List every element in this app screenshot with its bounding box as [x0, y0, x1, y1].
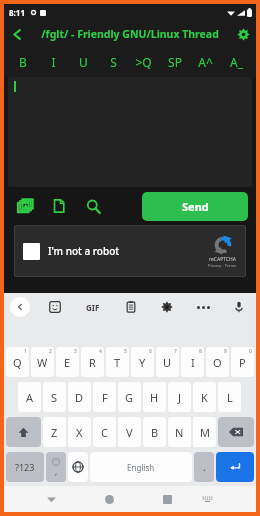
staticText: L	[227, 390, 233, 405]
button[interactable]: Enter	[216, 452, 254, 482]
staticText: 4	[99, 348, 102, 355]
button[interactable]: Stickers	[44, 296, 66, 318]
staticText: P	[239, 355, 246, 370]
button[interactable]: Z	[43, 417, 66, 447]
button[interactable]: E	[56, 347, 79, 377]
staticText: O	[213, 355, 222, 370]
button[interactable]: G	[118, 382, 141, 412]
button[interactable]: Switch keyboard	[193, 486, 222, 512]
button[interactable]: A_	[221, 47, 252, 77]
button[interactable]: Y	[131, 347, 154, 377]
button[interactable]: I'm not a robot checkbox	[23, 243, 40, 260]
staticText: A	[26, 390, 34, 405]
button[interactable]: W	[31, 347, 54, 377]
staticText: C	[101, 425, 108, 440]
button[interactable]: I	[181, 347, 204, 377]
button[interactable]: Recent apps	[153, 486, 182, 512]
button[interactable]: D	[68, 382, 91, 412]
button[interactable]: Clipboard	[120, 296, 142, 318]
staticText: B	[151, 425, 159, 440]
button[interactable]: B	[143, 417, 166, 447]
button[interactable]: I'm not a robot checkbox	[14, 225, 246, 277]
button[interactable]: Emoji and comma	[46, 452, 66, 482]
staticText: 0	[249, 348, 252, 355]
staticText: >Q	[135, 54, 152, 70]
button[interactable]: M	[193, 417, 216, 447]
button[interactable]: Attach image	[12, 193, 38, 219]
staticText: Q	[13, 355, 22, 370]
staticText: Send	[182, 199, 209, 214]
staticText: G	[125, 390, 134, 405]
staticText: J	[178, 390, 182, 405]
button[interactable]: A	[18, 382, 41, 412]
button[interactable]: Home	[95, 486, 124, 512]
button[interactable]: Back	[4, 21, 30, 47]
staticText: B	[19, 54, 27, 70]
staticText: R	[89, 355, 96, 370]
staticText: X	[76, 425, 83, 440]
button[interactable]: GIF	[80, 296, 106, 318]
staticText: W	[37, 355, 48, 370]
button[interactable]: >Q	[128, 47, 159, 77]
button[interactable]: SP	[159, 47, 190, 77]
button[interactable]: .	[194, 452, 214, 482]
button[interactable]: Send	[142, 192, 248, 221]
button[interactable]: U	[68, 47, 98, 77]
button[interactable]: T	[106, 347, 129, 377]
button[interactable]: I	[38, 47, 68, 77]
button[interactable]: Search	[80, 193, 106, 219]
staticText: 3	[74, 348, 77, 355]
button[interactable]: More options	[192, 296, 214, 318]
button[interactable]: F	[93, 382, 116, 412]
button[interactable]: B	[8, 47, 38, 77]
staticText: ?123	[15, 461, 35, 473]
button[interactable]: Q	[6, 347, 29, 377]
button[interactable]	[8, 77, 252, 187]
staticText: V	[126, 425, 133, 440]
staticText: 8	[199, 348, 202, 355]
staticText: 9	[224, 348, 227, 355]
button[interactable]: R	[81, 347, 104, 377]
staticText: Y	[139, 355, 146, 370]
button[interactable]: ?123	[6, 452, 44, 482]
staticText: 5	[124, 348, 127, 355]
staticText: I	[51, 54, 56, 70]
staticText: S	[110, 54, 117, 70]
button[interactable]: S	[43, 382, 66, 412]
button[interactable]: Voice input	[228, 296, 250, 318]
button[interactable]: A^	[190, 47, 221, 77]
staticText: 1	[24, 348, 27, 355]
staticText: reCAPTCHA	[209, 256, 236, 263]
button[interactable]: N	[168, 417, 191, 447]
staticText: A_	[230, 54, 243, 70]
button[interactable]: L	[218, 382, 241, 412]
staticText: 6	[149, 348, 152, 355]
staticText: 8:11	[9, 7, 25, 18]
staticText: A^	[198, 54, 213, 70]
button[interactable]: Keyboard settings	[156, 296, 178, 318]
staticText: GIF	[86, 302, 100, 313]
button[interactable]: Attach file	[46, 193, 72, 219]
button[interactable]: C	[93, 417, 116, 447]
button[interactable]: S	[98, 47, 128, 77]
button[interactable]: Back	[10, 297, 30, 317]
button[interactable]: H	[143, 382, 166, 412]
button[interactable]: Hide keyboard	[37, 486, 66, 512]
staticText: ,	[55, 466, 58, 477]
staticText: Z	[51, 425, 58, 440]
button[interactable]: K	[193, 382, 216, 412]
button[interactable]: O	[206, 347, 229, 377]
button[interactable]: Shift	[6, 417, 41, 447]
staticText: SP	[168, 54, 182, 70]
button[interactable]: Settings	[230, 21, 256, 47]
button[interactable]: Change language	[68, 452, 88, 482]
button[interactable]: English	[90, 452, 192, 482]
button[interactable]: Backspace	[218, 417, 254, 447]
button[interactable]: P	[231, 347, 254, 377]
staticText: U	[79, 54, 88, 70]
button[interactable]: J	[168, 382, 191, 412]
button[interactable]: X	[68, 417, 91, 447]
staticText: Privacy - Terms	[208, 263, 237, 268]
button[interactable]: V	[118, 417, 141, 447]
button[interactable]: U	[156, 347, 179, 377]
